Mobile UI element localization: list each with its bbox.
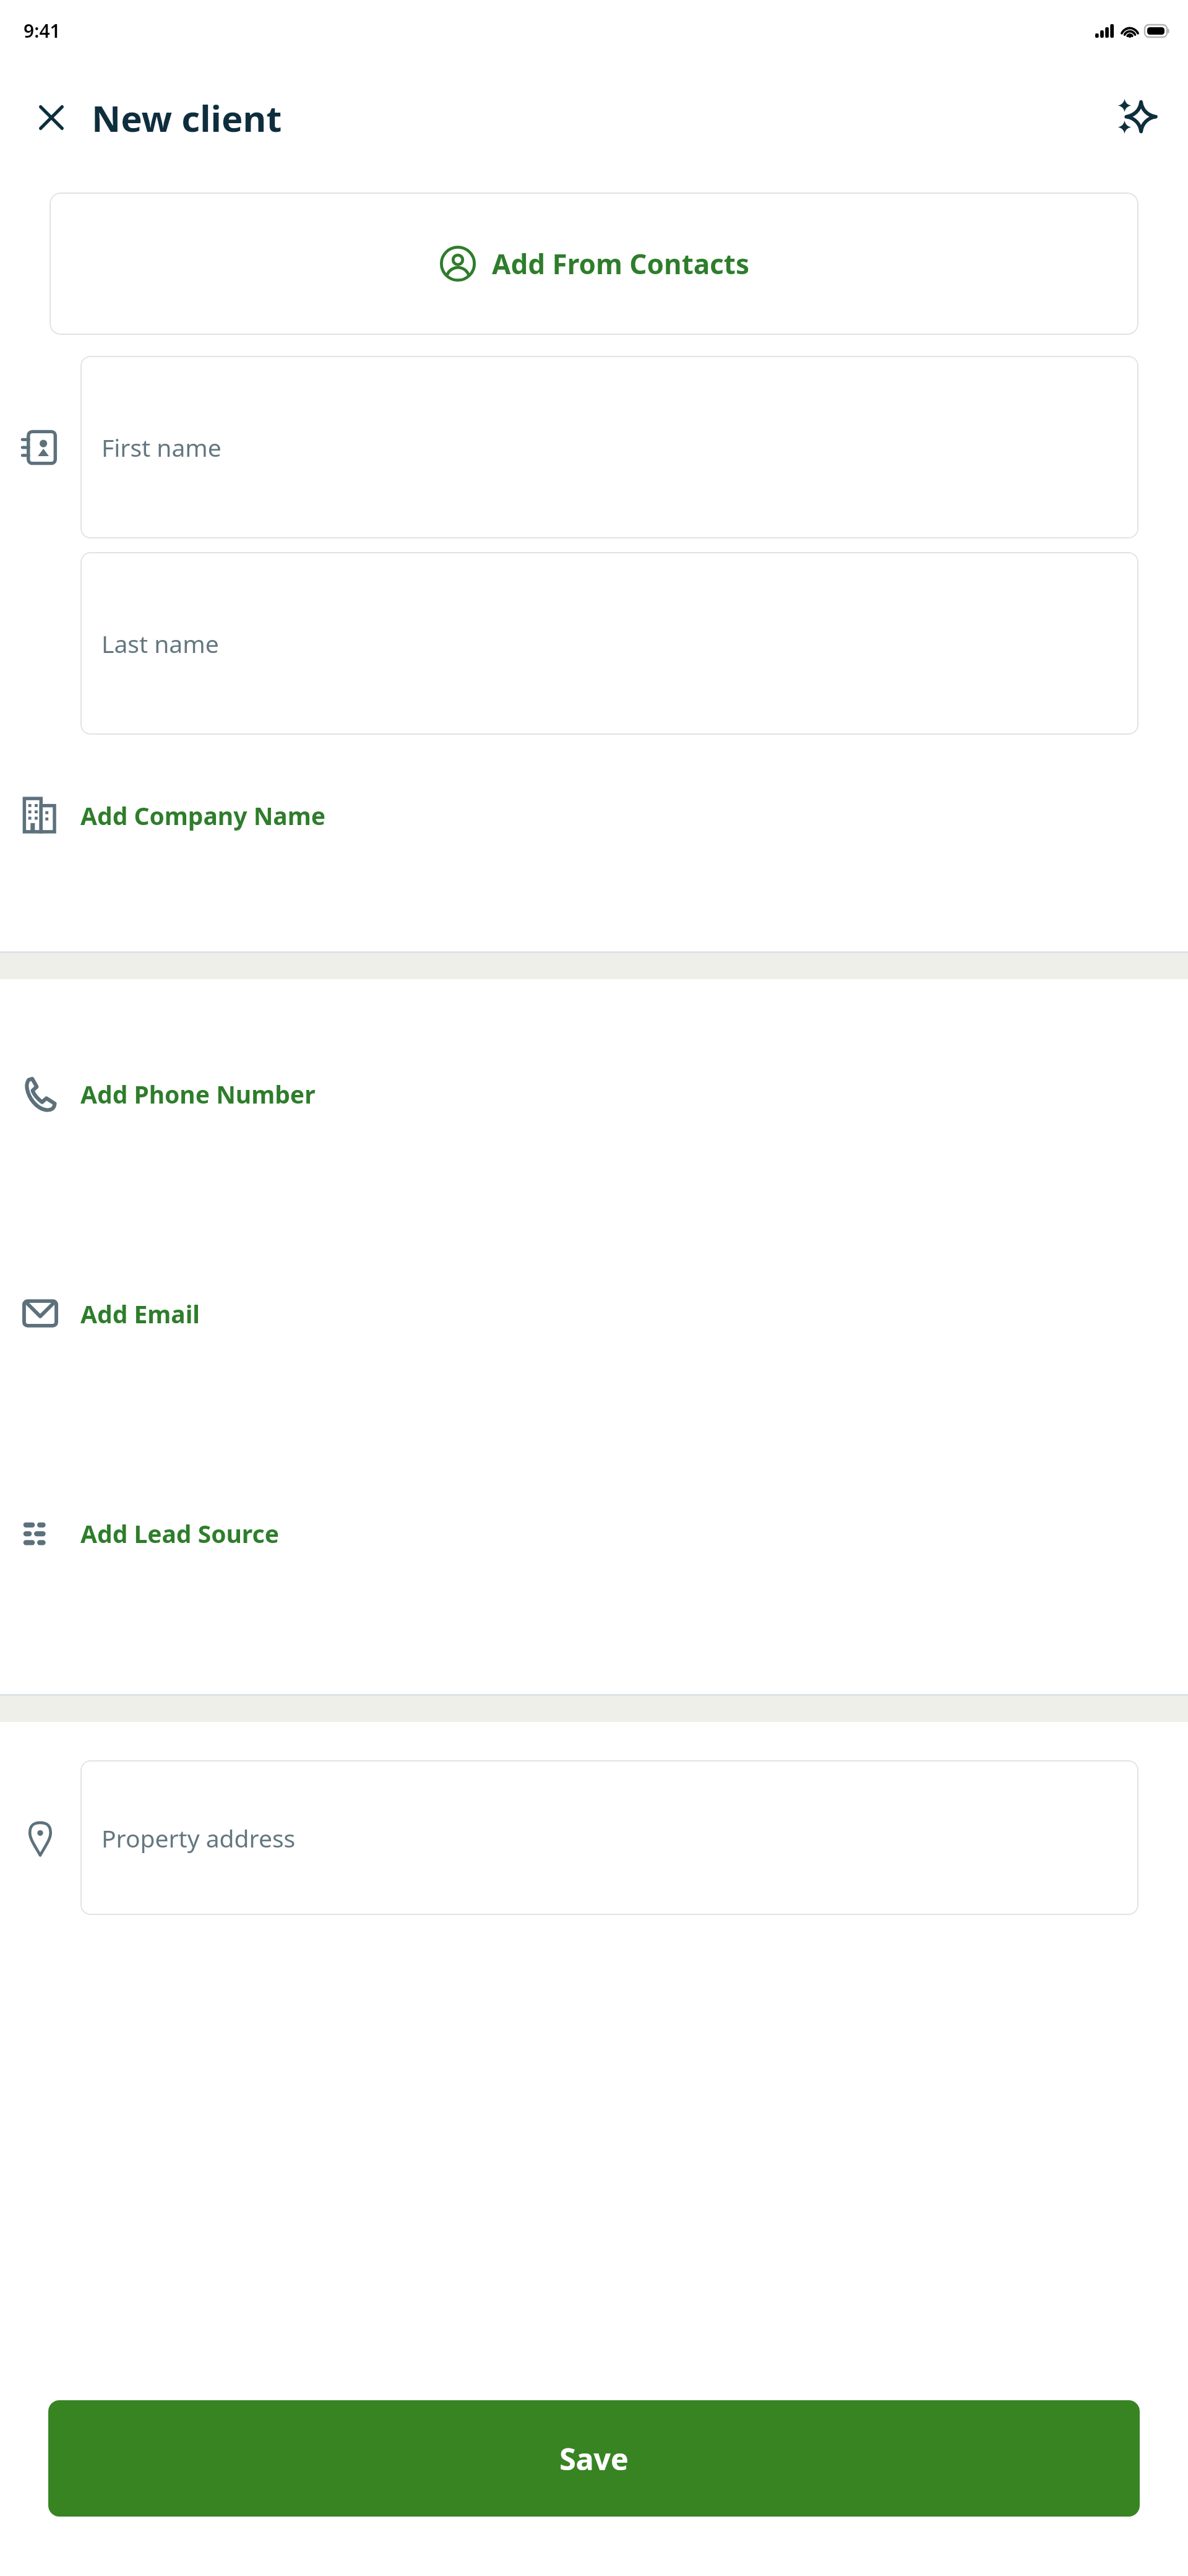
button[interactable]: Add Lead Source xyxy=(0,1480,1188,1586)
staticText: 9:41 xyxy=(24,18,61,43)
button[interactable]: Last name xyxy=(80,552,1138,735)
button[interactable]: Add From Contacts xyxy=(49,192,1138,335)
staticText: Add Phone Number xyxy=(80,1078,316,1110)
staticText: Last name xyxy=(101,627,219,660)
button[interactable]: Add Company Name xyxy=(0,753,1188,877)
staticText: Add Email xyxy=(80,1297,200,1330)
button[interactable]: First name xyxy=(80,356,1138,538)
staticText: Add Lead Source xyxy=(80,1517,279,1550)
button[interactable]: Property address xyxy=(80,1760,1138,1915)
button[interactable]: Add Email xyxy=(0,1261,1188,1366)
staticText: Property address xyxy=(101,1822,296,1854)
staticText: First name xyxy=(101,431,222,464)
button[interactable]: AI assist xyxy=(1108,90,1163,145)
staticText: Add Company Name xyxy=(80,799,326,832)
staticText: Save xyxy=(559,2439,629,2479)
staticText: Add From Contacts xyxy=(492,245,749,282)
staticText: New client xyxy=(92,93,282,142)
button[interactable]: Close xyxy=(25,91,78,144)
button[interactable]: Add Phone Number xyxy=(0,1041,1188,1146)
button[interactable]: Save xyxy=(48,2400,1140,2517)
